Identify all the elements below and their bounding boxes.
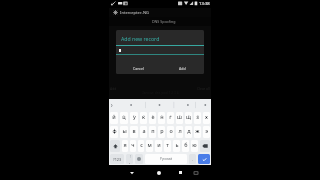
staticText: о (169, 127, 173, 134)
staticText: а (142, 127, 146, 134)
staticText: п (151, 127, 155, 134)
staticText: ч (131, 141, 135, 148)
staticText: ю (192, 141, 197, 148)
staticText: DNS Spoofing (152, 19, 176, 24)
staticText: 7 (170, 113, 172, 116)
staticText: 4 (143, 113, 145, 116)
button[interactable]: Enter (198, 154, 210, 164)
staticText: д (187, 127, 191, 134)
button[interactable]: Home (153, 165, 165, 180)
button[interactable]: ч (130, 140, 136, 152)
staticText: Cancel (133, 66, 144, 71)
button[interactable]: к (140, 112, 147, 124)
button[interactable]: Change keyboard (191, 165, 201, 180)
staticText: м (147, 141, 152, 148)
button[interactable]: щ (185, 112, 192, 124)
staticText: и (157, 141, 161, 148)
staticText: ?123 (113, 157, 122, 162)
button[interactable]: Emoji (135, 154, 143, 164)
button[interactable]: м (146, 140, 153, 152)
button[interactable]: с (138, 140, 144, 152)
button[interactable]: Shift (110, 140, 120, 152)
button[interactable]: о (167, 126, 174, 138)
button[interactable]: э (203, 126, 210, 138)
staticText: 2 (123, 113, 125, 116)
button[interactable]: ц (120, 112, 128, 124)
staticText: Add new record (121, 35, 160, 42)
staticText: с (140, 141, 143, 148)
other: Intercepter-NG icon (113, 10, 118, 15)
button[interactable]: ю (191, 140, 198, 152)
staticText: Clear all (197, 86, 210, 91)
button[interactable]: а (140, 126, 147, 138)
button[interactable]: ь (173, 140, 180, 152)
button[interactable]: и (155, 140, 162, 152)
button[interactable]: Add (176, 64, 189, 73)
button[interactable]: Intercepter-NG icon (109, 8, 211, 17)
staticText: ф (112, 127, 117, 134)
button[interactable]: ф (110, 126, 118, 138)
staticText: т (166, 141, 169, 148)
staticText: 5 (152, 113, 154, 116)
staticText: ь (175, 141, 179, 148)
button[interactable]: ш (176, 112, 183, 124)
staticText: 0 (197, 113, 199, 116)
button[interactable]: More suggestions (109, 103, 114, 108)
staticText: 1 (113, 113, 115, 116)
staticText: х (205, 113, 208, 120)
button[interactable]: д (185, 126, 192, 138)
staticText: к (142, 113, 145, 120)
staticText: . (192, 157, 194, 162)
button[interactable]: н (158, 112, 165, 124)
button[interactable]: Comma (126, 154, 133, 164)
button[interactable]: й (110, 112, 118, 124)
button[interactable]: Symbols (110, 154, 124, 164)
staticText: 6 (161, 113, 163, 116)
button[interactable]: г (167, 112, 174, 124)
button[interactable]: DNS Spoofing (149, 17, 179, 26)
button[interactable]: у (130, 112, 138, 124)
button[interactable]: л (176, 126, 183, 138)
button[interactable]: я (122, 140, 128, 152)
staticText: э (205, 127, 208, 134)
staticText: г (169, 113, 172, 120)
button[interactable]: Period (189, 154, 196, 164)
staticText: е (151, 113, 155, 120)
staticText: 3 (133, 113, 135, 116)
button[interactable]: х (203, 112, 210, 124)
button[interactable]: ж (194, 126, 201, 138)
button[interactable]: в (130, 126, 138, 138)
staticText: 8 (179, 113, 181, 116)
button[interactable]: п (149, 126, 156, 138)
staticText: ж (195, 127, 200, 134)
button[interactable]: Hide keyboard (126, 165, 138, 180)
staticText: Add (110, 86, 117, 91)
staticText: я (123, 141, 127, 148)
button[interactable]: з (194, 112, 201, 124)
button[interactable]: Space (145, 154, 187, 164)
staticText: 13:38 (199, 1, 210, 7)
button[interactable]: Recent apps (174, 165, 186, 180)
button[interactable]: Clear all (196, 85, 211, 92)
button[interactable]: е (149, 112, 156, 124)
staticText: 9 (188, 113, 190, 116)
button[interactable]: т (164, 140, 171, 152)
button[interactable]: ы (120, 126, 128, 138)
staticText: л (178, 127, 182, 134)
staticText: в (132, 127, 136, 134)
staticText: Add (179, 66, 186, 71)
staticText: ы (122, 127, 127, 134)
button[interactable]: Cancel (130, 64, 147, 73)
staticText: й (112, 113, 116, 120)
button[interactable]: р (158, 126, 165, 138)
button[interactable]: б (182, 140, 189, 152)
staticText: б (184, 141, 188, 148)
button[interactable]: Backspace (200, 140, 210, 152)
staticText: ц (122, 113, 126, 120)
button[interactable]: Add (109, 85, 118, 92)
staticText: Intercepter-NG (120, 10, 149, 16)
staticText: ! (130, 155, 131, 159)
